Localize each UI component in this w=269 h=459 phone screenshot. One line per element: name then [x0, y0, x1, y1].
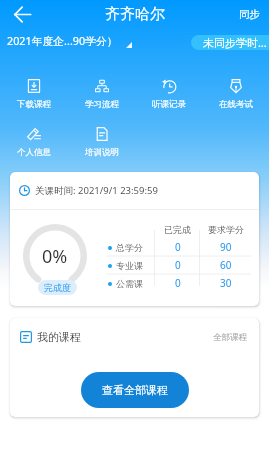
staticText: 学习流程 [85, 99, 119, 110]
button[interactable]: 学习流程 [68, 74, 135, 122]
staticText: 齐齐哈尔 [105, 5, 165, 24]
button[interactable]: 未同步学时… [191, 35, 269, 50]
button[interactable]: 听课记录 [135, 74, 202, 122]
button[interactable]: 2021年度企...90学分） [7, 33, 132, 48]
staticText: 已完成 [164, 224, 191, 235]
staticText: 60 [220, 258, 232, 272]
button[interactable]: 在线考试 [202, 74, 269, 122]
staticText: 专业课 [116, 260, 143, 271]
staticText: 同步 [239, 8, 260, 21]
staticText: 总学分 [116, 242, 143, 253]
staticText: 未同步学时… [203, 35, 267, 50]
staticText: 全部课程 [213, 332, 247, 343]
staticText: 完成度 [44, 282, 71, 293]
staticText: 个人信息 [17, 147, 51, 158]
staticText: 我的课程 [37, 330, 81, 344]
staticText: 听课记录 [152, 99, 186, 110]
staticText: 0 [175, 240, 181, 254]
staticText: 关课时间: 2021/9/1 23:59:59 [35, 184, 158, 197]
staticText: 要求学分 [208, 224, 244, 235]
staticText: 30 [220, 276, 232, 290]
staticText: 公需课 [116, 278, 143, 289]
staticText: 下载课程 [17, 99, 51, 110]
button[interactable]: 个人信息 [0, 122, 68, 170]
staticText: 90 [220, 240, 232, 254]
staticText: 在线考试 [219, 99, 253, 110]
staticText: 2021年度企...90学分） [7, 33, 118, 48]
staticText: 0% [42, 244, 68, 269]
button[interactable]: 同步 [231, 4, 269, 25]
button[interactable]: 培训说明 [68, 122, 135, 170]
staticText: 查看全部课程 [102, 383, 168, 397]
staticText: 0 [175, 258, 181, 272]
button[interactable]: 查看全部课程 [81, 372, 189, 408]
staticText: 0 [175, 276, 181, 290]
button[interactable]: Back [9, 1, 35, 27]
button[interactable]: 全部课程 [213, 332, 247, 343]
staticText: 培训说明 [85, 147, 119, 158]
button[interactable]: 下载课程 [0, 74, 68, 122]
